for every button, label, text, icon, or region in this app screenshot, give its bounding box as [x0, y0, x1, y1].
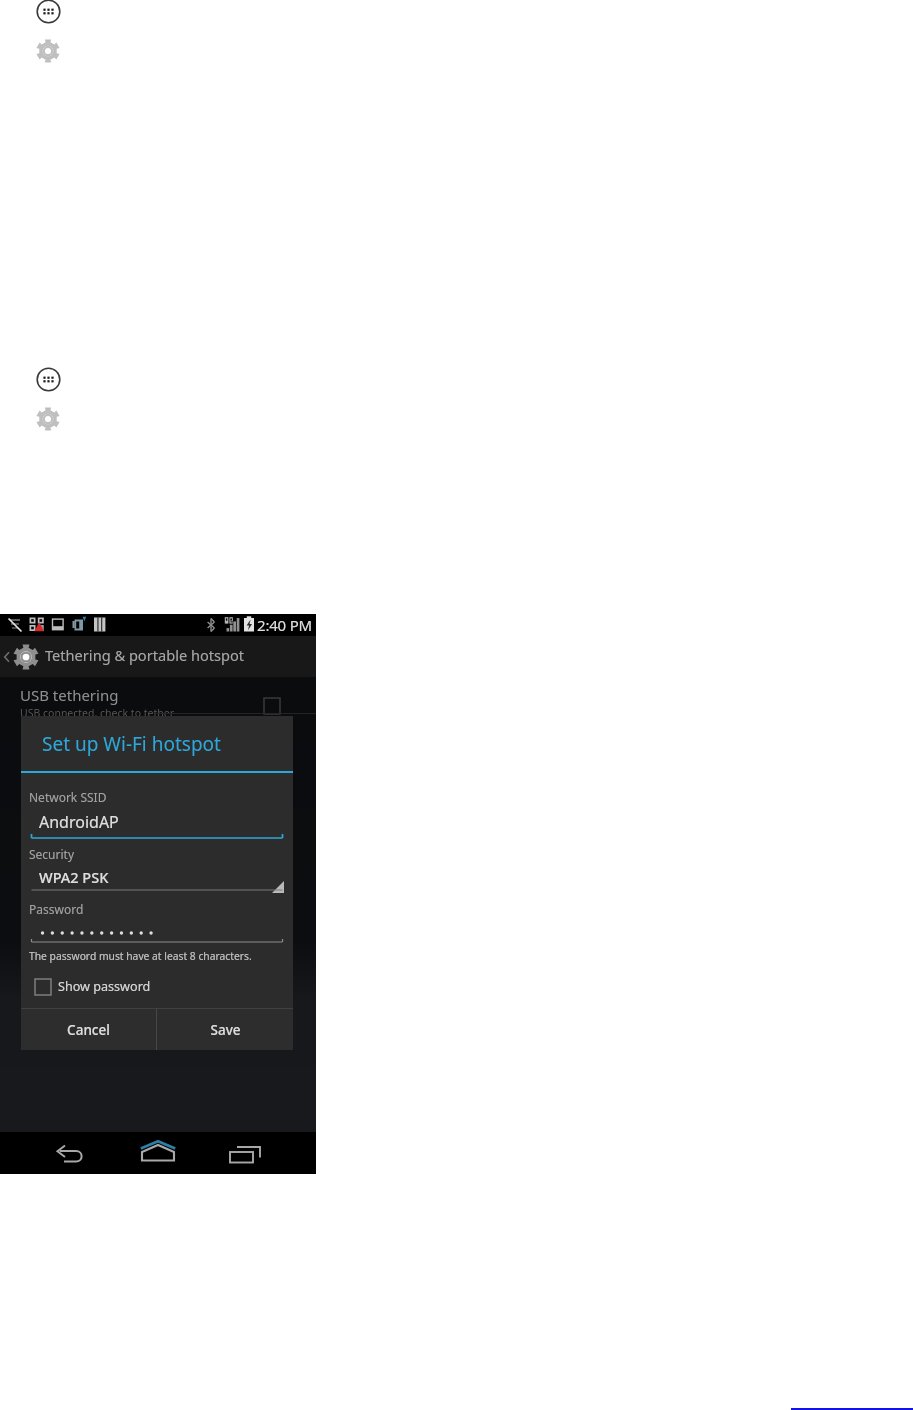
staticText: Tethering & portable hotspot — [45, 645, 245, 665]
button[interactable]: USB tethering — [0, 677, 316, 723]
staticText: WPA2 PSK — [39, 867, 109, 887]
button[interactable]: Cancel — [21, 1009, 156, 1050]
staticText: Cancel — [67, 1021, 110, 1039]
staticText: Show password — [58, 978, 151, 995]
staticText: Password — [29, 901, 84, 917]
staticText: Security — [29, 846, 75, 862]
staticText: The password must have at least 8 charac… — [29, 949, 252, 963]
button[interactable]: Apps — [36, 0, 61, 24]
staticText: Network SSID — [29, 789, 107, 805]
staticText: USB tethering — [20, 685, 119, 705]
button[interactable]: Show password — [35, 978, 151, 995]
staticText: Set up Wi-Fi hotspot — [42, 731, 221, 757]
staticText: USB connected, check to tether — [20, 706, 174, 720]
staticText: Save — [210, 1021, 241, 1039]
button[interactable]: WPA2 PSK — [29, 867, 285, 887]
button[interactable]: Apps — [36, 367, 61, 392]
button[interactable]: Recent apps — [227, 1143, 265, 1165]
button[interactable]: Settings — [35, 38, 61, 64]
button[interactable]: Save — [157, 1009, 293, 1050]
staticText: AndroidAP — [39, 811, 119, 833]
button[interactable]: Settings — [35, 406, 61, 432]
button[interactable]: Home — [139, 1137, 177, 1167]
staticText: 2:40 PM — [257, 615, 312, 635]
button[interactable]: Navigate up — [0, 636, 40, 677]
button[interactable]: Back — [52, 1143, 88, 1165]
